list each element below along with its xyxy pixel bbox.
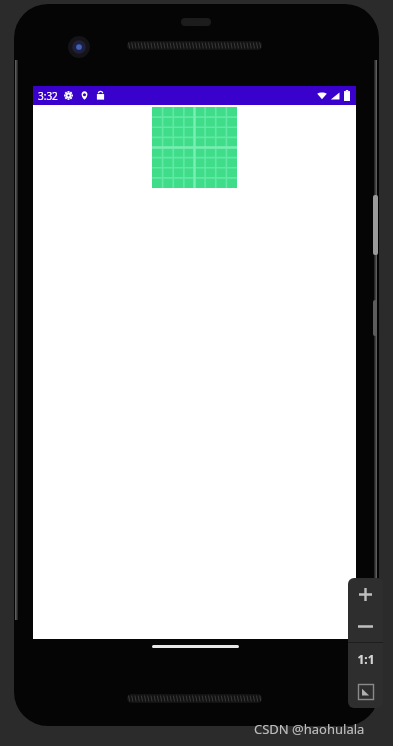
staticText: 1:1 bbox=[357, 651, 375, 667]
staticText: 3:32 bbox=[38, 89, 58, 103]
button[interactable]: Zoom in bbox=[348, 578, 383, 611]
button[interactable]: 1:1 bbox=[348, 643, 383, 675]
staticText: CSDN @haohulala bbox=[254, 720, 365, 738]
button[interactable]: Home gesture bbox=[152, 645, 239, 648]
button[interactable]: Fit to screen bbox=[348, 675, 383, 708]
button[interactable] bbox=[152, 107, 237, 188]
button[interactable]: Zoom out bbox=[348, 611, 383, 642]
